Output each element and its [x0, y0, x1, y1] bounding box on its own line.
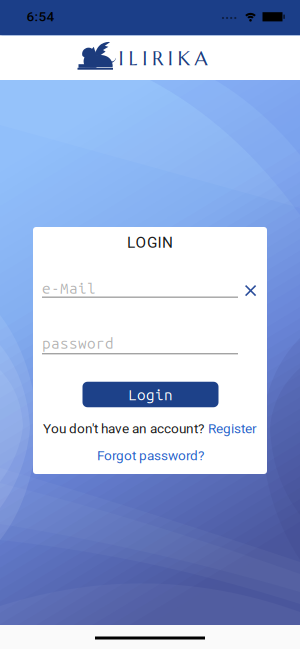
button[interactable]: Login: [82, 382, 218, 407]
staticText: You don't have an account?: [43, 420, 204, 436]
staticText: Register: [208, 420, 257, 436]
button[interactable]: [245, 285, 256, 296]
staticText: Forgot password?: [97, 447, 204, 463]
staticText: Login: [128, 386, 173, 403]
staticText: LOGIN: [127, 233, 173, 251]
staticText: ILIRIKA: [119, 46, 207, 71]
staticText: password: [42, 334, 114, 352]
staticText: 6:54: [26, 8, 54, 24]
button[interactable]: Forgot password?: [97, 447, 204, 463]
button[interactable]: Register: [208, 420, 257, 436]
staticText: e-Mail: [42, 279, 96, 297]
